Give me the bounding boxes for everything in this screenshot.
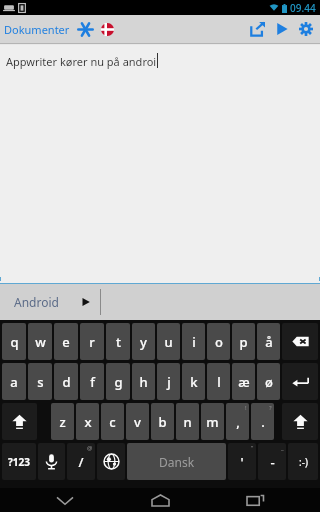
staticText: ! (245, 404, 247, 412)
staticText: c (109, 413, 116, 431)
button[interactable]: , (226, 403, 249, 440)
button[interactable]: l (207, 363, 230, 400)
staticText: m (206, 413, 219, 431)
button[interactable]: s (28, 363, 52, 400)
button[interactable]: ' (228, 443, 256, 480)
staticText: g (114, 373, 123, 391)
button[interactable]: ?123 (2, 443, 36, 480)
staticText: v (134, 413, 141, 431)
staticText: ø (265, 373, 273, 391)
button[interactable]: z (51, 403, 74, 440)
button[interactable]: p (232, 323, 255, 360)
staticText: l (217, 373, 221, 391)
staticText: w (35, 333, 46, 351)
button[interactable]: :-) (288, 443, 318, 480)
staticText: n (183, 413, 192, 431)
button[interactable]: Sprog dansk (96, 18, 118, 40)
staticText: t (116, 333, 121, 351)
button[interactable]: Formatering (74, 18, 96, 40)
staticText: - (270, 453, 275, 471)
staticText: z (59, 413, 66, 431)
button[interactable]: k (182, 363, 205, 400)
button[interactable]: u (157, 323, 180, 360)
staticText: f (90, 373, 95, 391)
staticText: Appwriter kører nu på androi (6, 54, 157, 69)
button[interactable]: Slet (282, 323, 318, 360)
staticText: y (140, 333, 147, 351)
button[interactable]: i (182, 323, 205, 360)
button[interactable]: b (151, 403, 174, 440)
staticText: d (62, 373, 71, 391)
staticText: r (89, 333, 95, 351)
button[interactable]: - (258, 443, 286, 480)
staticText: . (261, 413, 265, 431)
button[interactable]: f (80, 363, 104, 400)
staticText: x (84, 413, 92, 431)
staticText: ?123 (8, 455, 30, 469)
button[interactable]: a (2, 363, 26, 400)
button[interactable]: d (54, 363, 78, 400)
button[interactable]: ø (257, 363, 280, 400)
staticText: h (139, 373, 148, 391)
staticText: e (62, 333, 70, 351)
staticText: 09.44 (290, 1, 316, 15)
button[interactable]: Tale (38, 443, 65, 480)
button[interactable]: æ (232, 363, 255, 400)
button[interactable]: Skift (2, 403, 37, 440)
staticText: / (78, 453, 84, 471)
staticText: ? (269, 404, 272, 412)
button[interactable]: y (132, 323, 155, 360)
button[interactable]: g (106, 363, 130, 400)
button[interactable]: m (201, 403, 224, 440)
staticText: " (251, 444, 254, 452)
button[interactable]: q (2, 323, 26, 360)
staticText: q (10, 333, 19, 351)
button[interactable]: e (54, 323, 78, 360)
button[interactable]: n (176, 403, 199, 440)
button[interactable]: / (67, 443, 95, 480)
staticText: u (164, 333, 173, 351)
staticText: å (265, 333, 273, 351)
staticText: :-) (299, 455, 308, 469)
button[interactable]: Dokumenter (0, 15, 74, 43)
button[interactable]: Hjem (130, 488, 190, 512)
staticText: @ (87, 444, 93, 452)
staticText: s (37, 373, 44, 391)
staticText: æ (238, 373, 250, 391)
button[interactable]: Afspil (270, 17, 294, 41)
button[interactable]: å (257, 323, 280, 360)
button[interactable]: Indstillinger (294, 17, 318, 41)
staticText: k (190, 373, 198, 391)
button[interactable]: Dansk (127, 443, 226, 480)
staticText: _ (281, 444, 284, 452)
button[interactable]: v (126, 403, 149, 440)
button[interactable]: x (76, 403, 99, 440)
button[interactable]: Enter (282, 363, 318, 400)
button[interactable]: w (28, 323, 52, 360)
staticText: o (215, 333, 223, 351)
button[interactable]: r (80, 323, 104, 360)
staticText: a (10, 373, 18, 391)
staticText: b (158, 413, 167, 431)
button[interactable]: o (207, 323, 230, 360)
button[interactable]: Skift sprog (97, 443, 125, 480)
button[interactable]: Android (0, 284, 91, 320)
staticText: i (192, 333, 196, 351)
staticText: ' (240, 453, 244, 471)
staticText: Dokumenter (4, 22, 70, 37)
button[interactable]: . (251, 403, 274, 440)
staticText: Android (14, 294, 59, 310)
button[interactable]: Del (246, 17, 270, 41)
staticText: p (239, 333, 248, 351)
button[interactable]: j (157, 363, 180, 400)
button[interactable]: h (132, 363, 155, 400)
button[interactable]: c (101, 403, 124, 440)
staticText: Dansk (159, 454, 195, 470)
staticText: j (167, 373, 171, 391)
button[interactable]: Seneste apps (225, 488, 285, 512)
staticText: , (236, 413, 240, 431)
button[interactable]: Skift (282, 403, 318, 440)
button[interactable]: t (106, 323, 130, 360)
button[interactable]: Skjul tastatur (35, 488, 95, 512)
